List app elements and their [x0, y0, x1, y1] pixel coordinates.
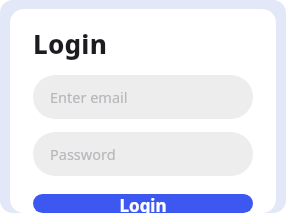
button[interactable]: Password: [33, 132, 253, 176]
button[interactable]: Enter email: [33, 75, 253, 119]
staticText: Login: [33, 26, 107, 61]
staticText: Enter email: [50, 87, 128, 107]
button[interactable]: Login: [33, 194, 253, 213]
staticText: Password: [50, 144, 116, 164]
staticText: Login: [119, 194, 167, 213]
